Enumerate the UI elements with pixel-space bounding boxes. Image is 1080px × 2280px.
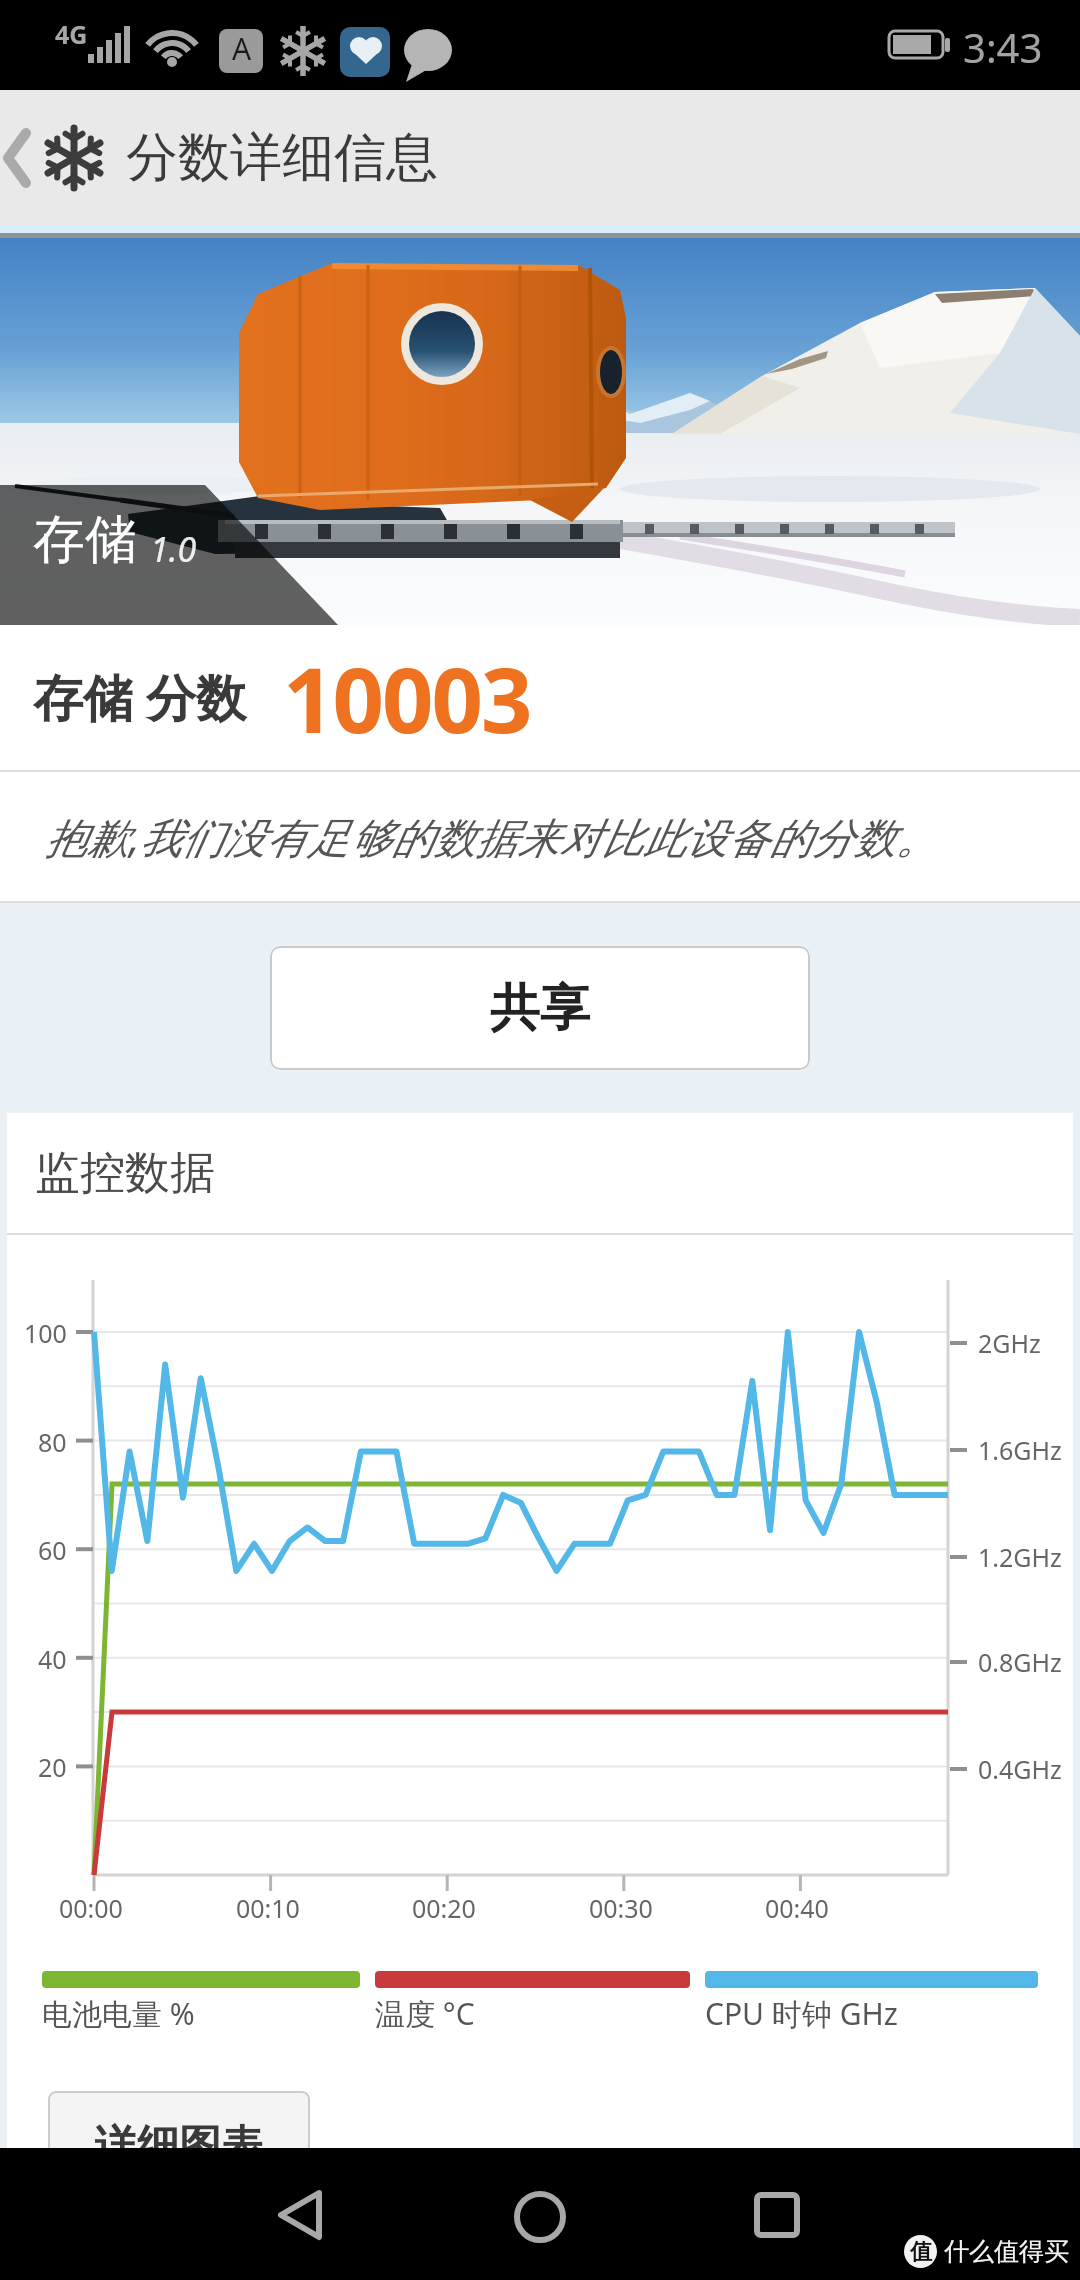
staticText: 4G — [55, 17, 88, 51]
staticText: 温度 °C — [375, 1993, 475, 2034]
staticText: 00:00 — [59, 1891, 123, 1925]
staticText: 0.8GHz — [978, 1645, 1062, 1679]
staticText: 什么值得买 — [944, 2236, 1069, 2267]
staticText: 00:40 — [765, 1891, 829, 1925]
button[interactable] — [277, 2190, 323, 2240]
staticText: 80 — [38, 1425, 67, 1459]
staticText: 1.2GHz — [978, 1540, 1062, 1574]
staticText: 1.6GHz — [978, 1433, 1062, 1467]
staticText: 0.4GHz — [978, 1752, 1062, 1786]
staticText: 3:43 — [963, 20, 1043, 74]
button[interactable]: 共享 — [270, 946, 810, 1070]
staticText: 100 — [24, 1316, 67, 1350]
staticText: 存储 分数 — [33, 663, 246, 731]
staticText: CPU 时钟 GHz — [705, 1993, 898, 2034]
staticText: 00:30 — [589, 1891, 653, 1925]
staticText: 监控数据 — [35, 1145, 215, 1202]
staticText: 值 — [910, 2238, 932, 2266]
button[interactable] — [514, 2191, 566, 2243]
staticText: 存储 — [33, 507, 137, 573]
staticText: 电池电量 % — [42, 1993, 195, 2034]
staticText: 抱歉,我们没有足够的数据来对比此设备的分数。 — [45, 808, 938, 865]
button[interactable] — [754, 2192, 800, 2238]
staticText: 00:10 — [236, 1891, 300, 1925]
staticText: 共享 — [490, 977, 590, 1040]
staticText: 2GHz — [978, 1326, 1041, 1360]
staticText: 20 — [38, 1750, 67, 1784]
staticText: 00:20 — [412, 1891, 476, 1925]
staticText: 详细图表 — [95, 2120, 263, 2173]
staticText: A — [232, 28, 252, 69]
staticText: 1.0 — [150, 526, 197, 572]
staticText: 分数详细信息 — [126, 125, 438, 191]
staticText: 40 — [38, 1642, 67, 1676]
button[interactable]: 详细图表 — [48, 2091, 310, 2201]
button[interactable] — [2, 123, 36, 193]
staticText: 60 — [38, 1533, 67, 1567]
staticText: 10003 — [283, 637, 531, 760]
